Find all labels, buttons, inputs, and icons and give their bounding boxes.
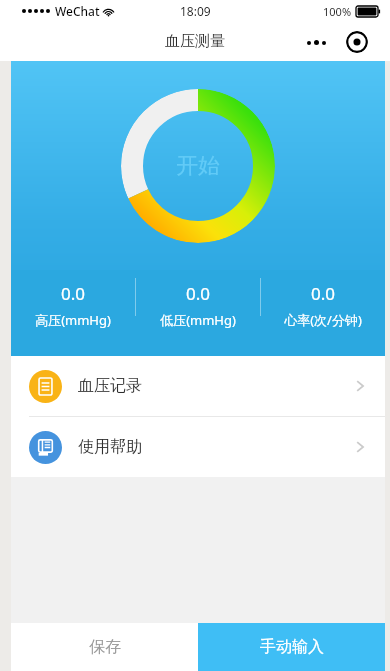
button[interactable]: 手动输入 bbox=[198, 623, 385, 671]
staticText: 手动输入 bbox=[260, 637, 324, 657]
staticText: 开始 bbox=[176, 152, 220, 180]
button[interactable]: 血压记录 bbox=[11, 356, 385, 416]
button[interactable]: More bbox=[305, 34, 328, 51]
button[interactable]: 开始 bbox=[121, 89, 275, 243]
button[interactable]: 保存 bbox=[11, 623, 198, 671]
staticText: WeChat bbox=[55, 3, 100, 19]
staticText: 0.0 bbox=[61, 282, 86, 305]
staticText: 血压记录 bbox=[78, 376, 142, 396]
button[interactable]: Close bbox=[346, 31, 368, 53]
staticText: 使用帮助 bbox=[78, 437, 142, 457]
staticText: 高压(mmHg) bbox=[35, 311, 111, 329]
staticText: 0.0 bbox=[311, 282, 336, 305]
staticText: 低压(mmHg) bbox=[160, 311, 236, 329]
staticText: 0.0 bbox=[186, 282, 211, 305]
staticText: 心率(次/分钟) bbox=[284, 311, 362, 329]
staticText: 100% bbox=[323, 4, 352, 19]
button[interactable]: 使用帮助 bbox=[11, 417, 385, 477]
staticText: 血压测量 bbox=[165, 32, 225, 51]
staticText: 保存 bbox=[89, 637, 121, 657]
staticText: 18:09 bbox=[180, 3, 211, 19]
